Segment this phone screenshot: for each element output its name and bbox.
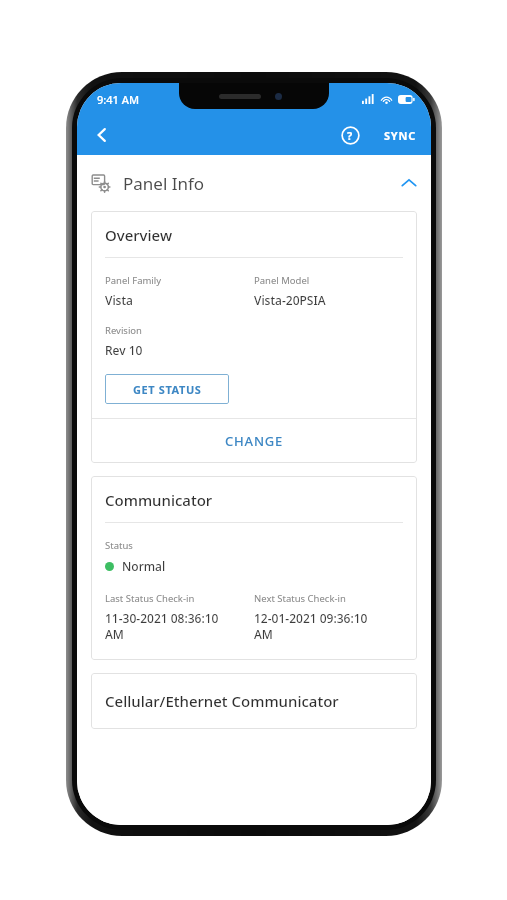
staticText: Cellular/Ethernet Communicator [105, 691, 339, 711]
staticText: Panel Model [254, 274, 310, 287]
button[interactable]: Back [83, 116, 121, 154]
staticText: Panel Info [123, 172, 205, 195]
staticText: Overview [105, 225, 172, 245]
staticText: Vista-20PSIA [254, 292, 326, 308]
staticText: ? [347, 128, 353, 143]
button[interactable]: Panel Info [77, 155, 431, 211]
staticText: Last Status Check-in [105, 592, 195, 605]
button[interactable]: CHANGE [91, 419, 417, 463]
button[interactable]: GET STATUS [105, 374, 229, 404]
staticText: Next Status Check-in [254, 592, 346, 605]
staticText: Communicator [105, 490, 213, 510]
staticText: Rev 10 [105, 342, 143, 358]
staticText: Normal [122, 558, 166, 574]
staticText: Revision [105, 324, 142, 337]
button[interactable]: Help [330, 115, 370, 155]
staticText: 12-01-2021 09:36:10 AM [254, 610, 368, 642]
staticText: 9:41 AM [97, 92, 140, 107]
staticText: GET STATUS [133, 382, 202, 397]
staticText: Status [105, 539, 133, 552]
staticText: 11-30-2021 08:36:10 AM [105, 610, 219, 642]
button[interactable]: SYNC [370, 120, 431, 151]
staticText: CHANGE [225, 432, 284, 450]
staticText: SYNC [384, 128, 417, 143]
staticText: Vista [105, 292, 133, 308]
staticText: Panel Family [105, 274, 162, 287]
